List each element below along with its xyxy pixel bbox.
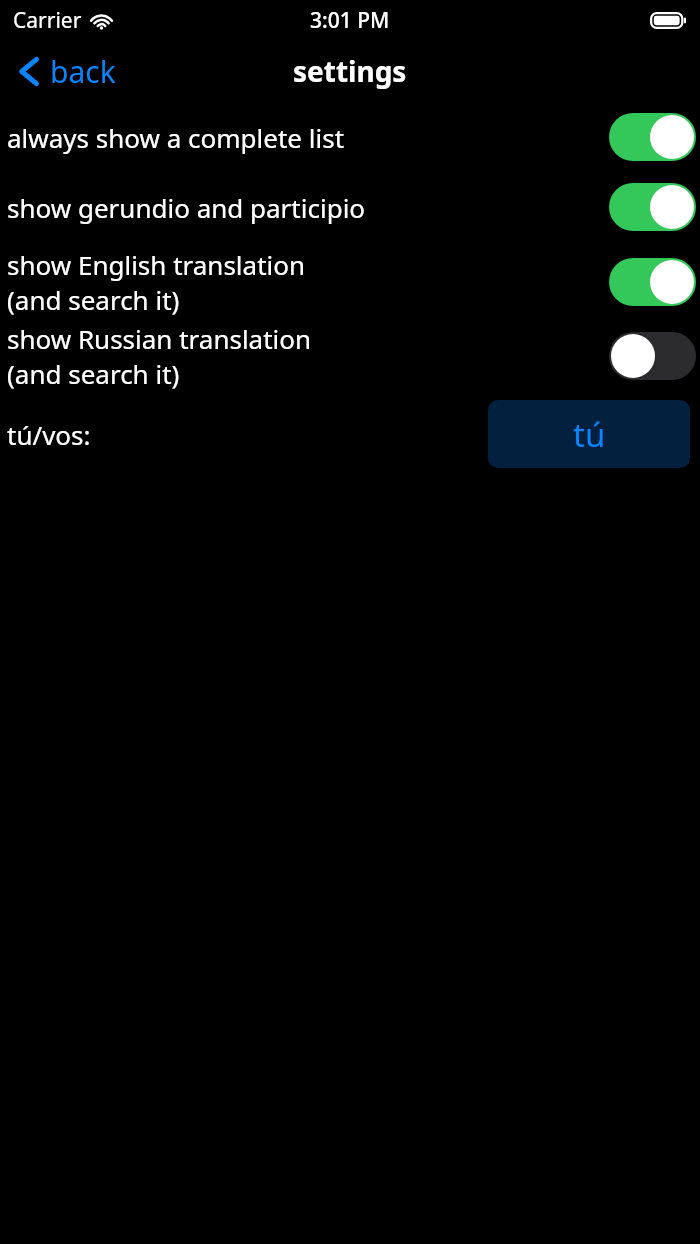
staticText: show gerundio and participio [7, 190, 366, 225]
staticText: (and search it) [7, 356, 180, 391]
button[interactable]: Enabled toggle [609, 113, 696, 161]
button[interactable]: show English translation [0, 246, 700, 318]
button[interactable]: tú [488, 400, 690, 468]
staticText: tú [573, 412, 606, 457]
staticText: tú/vos: [7, 417, 91, 452]
staticText: show Russian translation [7, 321, 312, 356]
button[interactable]: Enabled toggle [609, 258, 696, 306]
button[interactable]: back [0, 43, 130, 100]
button[interactable]: always show a complete list [0, 106, 700, 168]
staticText: show English translation [7, 247, 306, 282]
staticText: 3:01 PM [310, 6, 390, 35]
staticText: back [50, 51, 116, 92]
staticText: Carrier [13, 6, 82, 35]
staticText: settings [293, 52, 407, 90]
button[interactable]: show Russian translation [0, 320, 700, 392]
button[interactable]: show gerundio and participio [0, 176, 700, 238]
staticText: (and search it) [7, 282, 180, 317]
button[interactable]: Enabled toggle [609, 183, 696, 231]
button[interactable]: Disabled toggle [609, 332, 696, 380]
staticText: always show a complete list [7, 120, 345, 155]
